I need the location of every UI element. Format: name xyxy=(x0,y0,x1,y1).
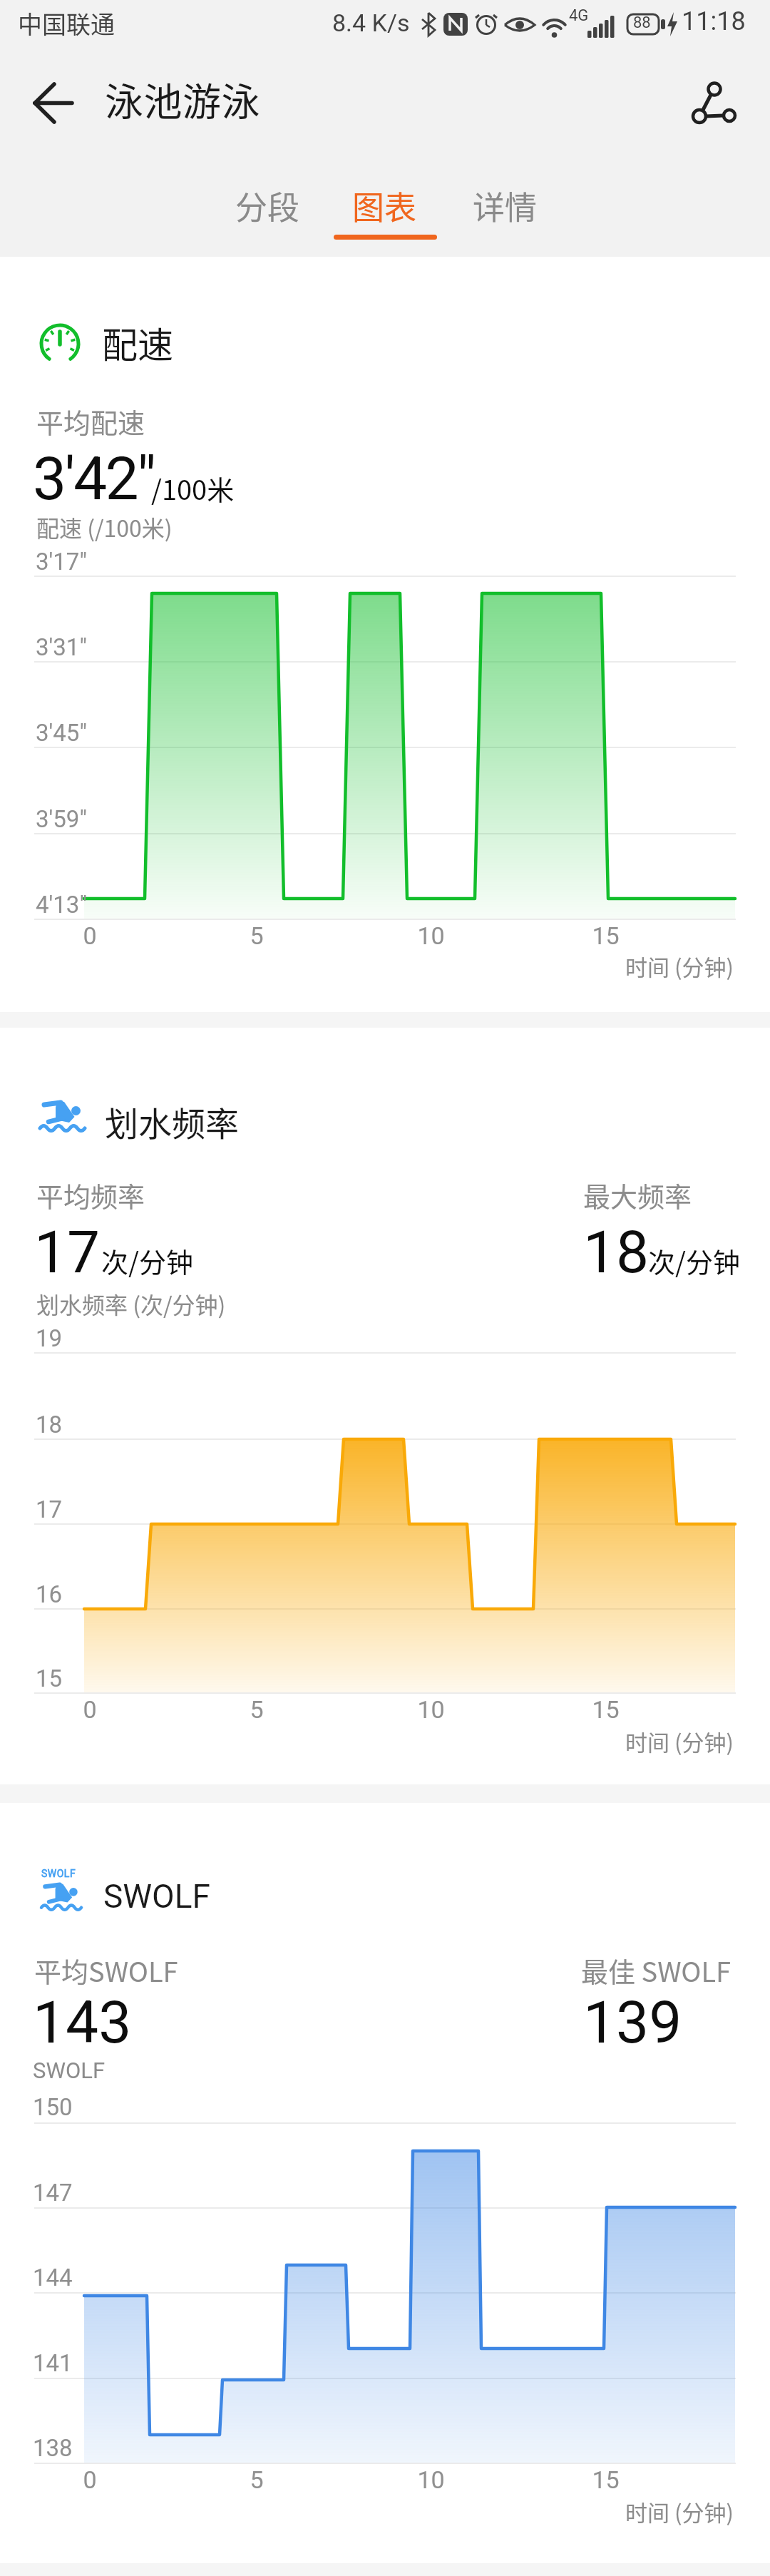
staticText: 时间 (分钟) xyxy=(625,1725,734,1757)
staticText: 138 xyxy=(33,2434,73,2462)
staticText: 3'31" xyxy=(36,633,87,661)
staticText: 5 xyxy=(250,2465,264,2494)
staticText: 88 xyxy=(633,14,651,32)
staticText: SWOLF xyxy=(103,1877,210,1916)
staticText: 0 xyxy=(83,2465,97,2494)
staticText: 详情 xyxy=(473,183,538,229)
staticText: 8.4 K/s xyxy=(332,9,410,37)
staticText: 3'42" xyxy=(33,444,155,513)
staticText: 次/分钟 xyxy=(101,1241,193,1280)
staticText: 17 xyxy=(34,1218,101,1287)
staticText: 10 xyxy=(417,921,445,950)
staticText: 图表 xyxy=(352,183,417,229)
staticText: 141 xyxy=(33,2349,73,2377)
staticText: 144 xyxy=(33,2264,73,2291)
staticText: 最大频率 xyxy=(583,1175,692,1215)
staticText: 平均配速 xyxy=(36,402,145,441)
staticText: /100米 xyxy=(151,469,235,508)
staticText: 143 xyxy=(33,1988,132,2057)
button[interactable]: 图表 xyxy=(338,173,431,237)
staticText: 10 xyxy=(417,1695,445,1724)
staticText: 3'45" xyxy=(36,719,87,747)
staticText: 4G xyxy=(569,6,589,25)
button[interactable] xyxy=(677,68,756,139)
staticText: 配速 xyxy=(102,317,173,368)
staticText: 139 xyxy=(583,1988,682,2057)
staticText: 19 xyxy=(36,1324,63,1352)
staticText: 18 xyxy=(583,1218,650,1287)
button[interactable]: 分段 xyxy=(221,173,314,237)
staticText: 时间 (分钟) xyxy=(625,2495,734,2528)
staticText: 划水频率 xyxy=(105,1097,239,1145)
staticText: 时间 (分钟) xyxy=(625,950,734,982)
staticText: 0 xyxy=(83,921,97,950)
staticText: SWOLF xyxy=(41,1868,76,1879)
staticText: 泳池游泳 xyxy=(105,71,260,127)
staticText: 10 xyxy=(417,2465,445,2494)
staticText: 15 xyxy=(592,1695,620,1724)
staticText: 平均SWOLF xyxy=(34,1951,178,1990)
staticText: 次/分钟 xyxy=(648,1241,740,1280)
staticText: 147 xyxy=(33,2179,73,2207)
staticText: 17 xyxy=(36,1496,63,1523)
staticText: 11:18 xyxy=(682,6,746,36)
staticText: 15 xyxy=(592,2465,620,2494)
staticText: 平均频率 xyxy=(36,1175,145,1215)
staticText: SWOLF xyxy=(33,2058,106,2083)
staticText: 5 xyxy=(250,921,264,950)
staticText: 划水频率 (次/分钟) xyxy=(36,1287,226,1320)
staticText: 中国联通 xyxy=(18,6,115,41)
staticText: 3'59" xyxy=(36,805,87,833)
staticText: 配速 (/100米) xyxy=(36,511,173,543)
staticText: 15 xyxy=(592,921,620,950)
staticText: 分段 xyxy=(235,183,300,229)
staticText: 150 xyxy=(33,2093,73,2121)
staticText: 5 xyxy=(250,1695,264,1724)
staticText: 0 xyxy=(83,1695,97,1724)
button[interactable] xyxy=(18,68,89,139)
staticText: 3'17" xyxy=(36,548,87,576)
button[interactable]: 详情 xyxy=(458,173,551,237)
staticText: 18 xyxy=(36,1411,63,1438)
staticText: 4'13" xyxy=(36,891,87,919)
staticText: 15 xyxy=(36,1665,63,1692)
staticText: 最佳 SWOLF xyxy=(581,1951,731,1990)
staticText: 16 xyxy=(36,1580,63,1608)
